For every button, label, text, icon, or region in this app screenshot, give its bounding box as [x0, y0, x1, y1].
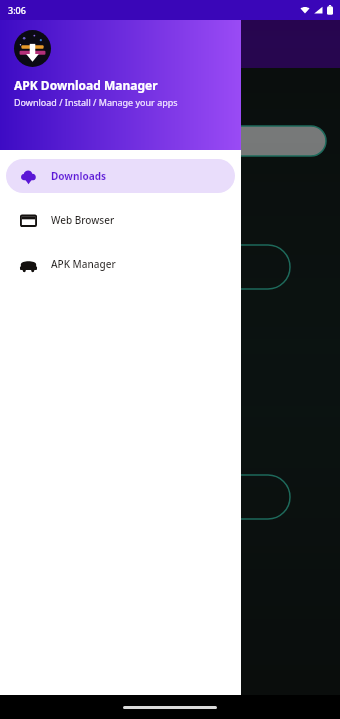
button[interactable] — [196, 126, 326, 156]
staticText: Downloads — [51, 169, 106, 183]
staticText: 3:06 — [8, 4, 26, 16]
staticText: Web Browser — [51, 213, 115, 227]
button[interactable]: APK Manager — [6, 247, 235, 281]
staticText: Download / Install / Manage your apps — [14, 96, 178, 108]
staticText: APK Manager — [51, 257, 116, 271]
button[interactable]: Downloads — [6, 159, 235, 193]
button[interactable]: Web Browser — [6, 203, 235, 237]
staticText: APK Download Manager — [14, 77, 158, 93]
